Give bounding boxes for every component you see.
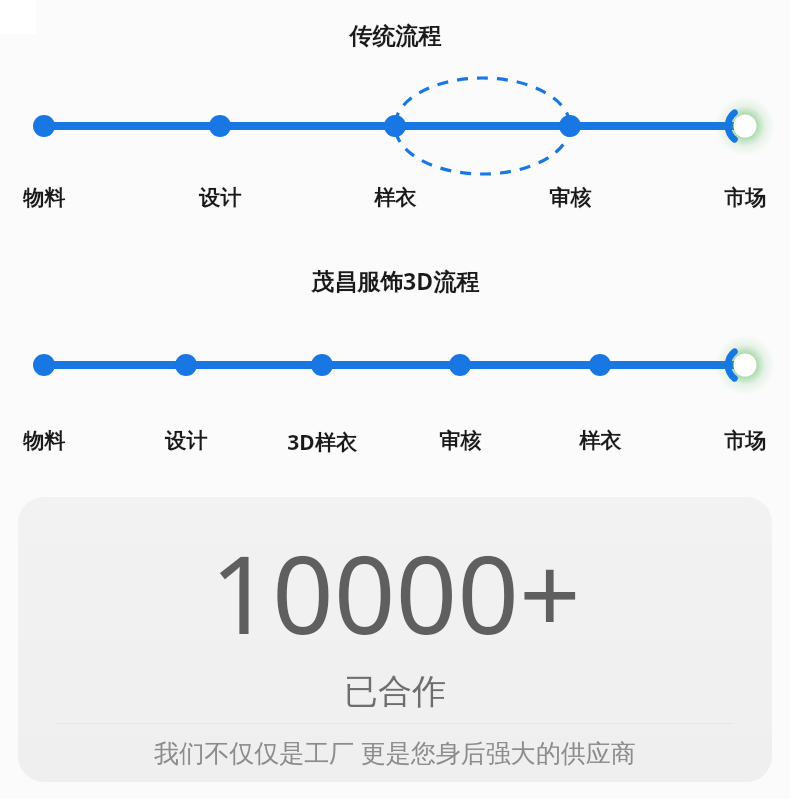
staticText: 茂昌服饰3D流程 [0,265,790,296]
button[interactable]: 样衣 [540,428,660,454]
staticText: 传统流程 [0,22,790,51]
staticText: 市场 [685,428,790,454]
staticText: 审核 [510,185,630,211]
staticText: 设计 [126,428,246,454]
staticText: 样衣 [335,185,455,211]
staticText: 审核 [400,428,520,454]
staticText: 市场 [685,185,790,211]
button[interactable]: 审核 [400,428,520,454]
button[interactable]: 10000+ [18,497,772,782]
staticText: 我们不仅仅是工厂 更是您身后强大的供应商 [18,735,772,769]
button[interactable]: 市场 [685,185,790,211]
staticText: 已合作 [344,670,446,713]
button[interactable]: 物料 [0,428,104,454]
staticText: 10000+ [210,519,581,666]
button[interactable]: 审核 [510,185,630,211]
button[interactable]: 物料 [0,185,104,211]
button[interactable]: 设计 [126,428,246,454]
button[interactable]: 3D样衣 [262,428,382,457]
staticText: 设计 [160,185,280,211]
staticText: 物料 [0,185,104,211]
button[interactable]: 样衣 [335,185,455,211]
button[interactable]: 设计 [160,185,280,211]
staticText: 3D样衣 [262,428,382,457]
staticText: 物料 [0,428,104,454]
staticText: 样衣 [540,428,660,454]
button[interactable]: 市场 [685,428,790,454]
